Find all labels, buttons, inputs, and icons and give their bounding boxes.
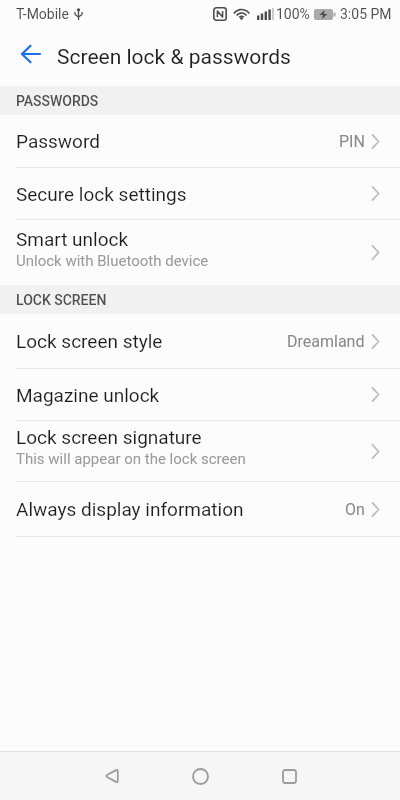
button[interactable]: Always display information <box>0 482 400 536</box>
staticText: Unlock with Bluetooth device <box>16 252 209 270</box>
staticText: On <box>345 500 365 519</box>
staticText: 3:05 PM <box>340 6 392 22</box>
button[interactable]: Lock screen signature <box>0 421 400 481</box>
staticText: 100% <box>276 6 310 22</box>
staticText: This will appear on the lock screen <box>16 450 246 468</box>
staticText: Smart unlock <box>16 228 129 250</box>
staticText: PASSWORDS <box>16 93 99 109</box>
button[interactable] <box>176 752 224 800</box>
staticText: Magazine unlock <box>16 384 160 406</box>
staticText: Lock screen signature <box>16 426 202 448</box>
button[interactable]: Magazine unlock <box>0 369 400 420</box>
staticText: LOCK SCREEN <box>16 292 107 308</box>
staticText: Password <box>16 130 100 152</box>
button[interactable] <box>87 752 135 800</box>
staticText: Dreamland <box>287 332 365 351</box>
button[interactable]: Smart unlock <box>0 220 400 285</box>
button[interactable] <box>0 29 56 85</box>
button[interactable]: Secure lock settings <box>0 168 400 219</box>
staticText: Screen lock & passwords <box>57 45 291 70</box>
button[interactable] <box>265 752 313 800</box>
button[interactable]: Password <box>0 115 400 167</box>
staticText: Always display information <box>16 498 244 520</box>
staticText: T-Mobile <box>16 6 69 22</box>
button[interactable]: Lock screen style <box>0 314 400 368</box>
staticText: PIN <box>339 132 365 151</box>
staticText: Secure lock settings <box>16 183 187 205</box>
staticText: Lock screen style <box>16 330 163 352</box>
